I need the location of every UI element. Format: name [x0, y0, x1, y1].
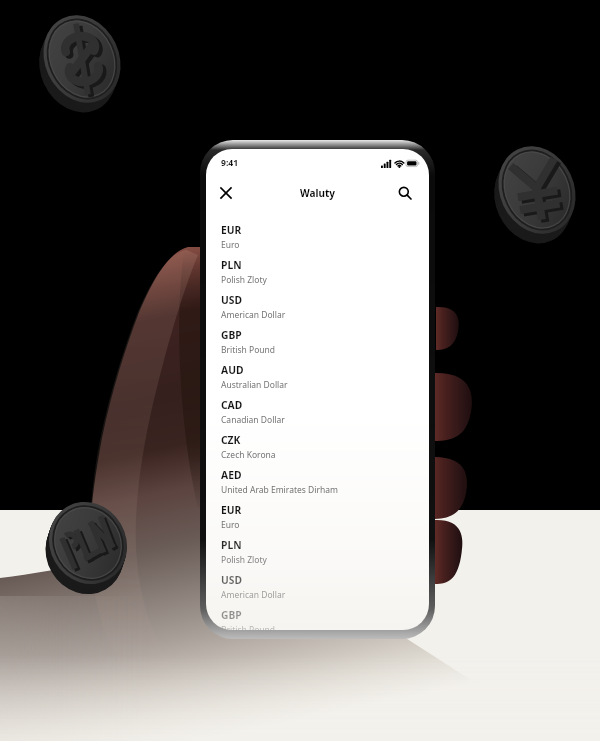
staticText: CZK: [221, 433, 241, 447]
button[interactable]: EUR: [206, 503, 429, 538]
staticText: British Pound: [221, 624, 276, 630]
staticText: Euro: [221, 519, 240, 531]
staticText: EUR: [221, 223, 242, 237]
button[interactable]: CZK: [206, 433, 429, 468]
staticText: Euro: [221, 239, 240, 251]
button[interactable]: PLN: [206, 258, 429, 293]
staticText: EUR: [221, 503, 242, 517]
staticText: Polish Zloty: [221, 274, 267, 286]
staticText: Polish Zloty: [221, 554, 267, 566]
staticText: CAD: [221, 398, 243, 412]
button[interactable]: AED: [206, 468, 429, 503]
staticText: American Dollar: [221, 309, 286, 321]
button[interactable]: Search: [389, 177, 421, 209]
button[interactable]: GBP: [206, 608, 429, 630]
staticText: United Arab Emirates Dirham: [221, 484, 338, 496]
staticText: AED: [221, 468, 242, 482]
button[interactable]: USD: [206, 573, 429, 608]
staticText: Waluty: [300, 186, 335, 200]
button[interactable]: Close: [210, 177, 242, 209]
staticText: USD: [221, 573, 242, 587]
staticText: 9:41: [221, 157, 239, 169]
button[interactable]: GBP: [206, 328, 429, 363]
staticText: AUD: [221, 363, 244, 377]
staticText: British Pound: [221, 344, 276, 356]
button[interactable]: CAD: [206, 398, 429, 433]
staticText: American Dollar: [221, 589, 286, 601]
staticText: Czech Korona: [221, 449, 276, 461]
staticText: GBP: [221, 328, 242, 342]
staticText: USD: [221, 293, 242, 307]
button[interactable]: AUD: [206, 363, 429, 398]
button[interactable]: USD: [206, 293, 429, 328]
staticText: PLN: [221, 538, 242, 552]
staticText: Canadian Dollar: [221, 414, 285, 426]
staticText: PLN: [221, 258, 242, 272]
staticText: GBP: [221, 608, 242, 622]
staticText: Australian Dollar: [221, 379, 288, 391]
button[interactable]: EUR: [206, 223, 429, 258]
button[interactable]: PLN: [206, 538, 429, 573]
